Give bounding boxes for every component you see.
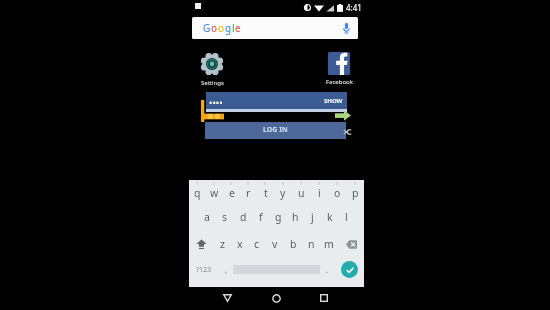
- button[interactable]: ?123: [189, 257, 219, 282]
- button[interactable]: ,: [219, 257, 233, 282]
- other: Voice search: [343, 22, 350, 34]
- button[interactable]: .: [320, 257, 334, 282]
- button[interactable]: Facebook: [321, 52, 357, 86]
- staticText: o: [218, 21, 225, 35]
- staticText: t: [264, 186, 268, 200]
- button[interactable]: c: [248, 231, 266, 257]
- button[interactable]: 6: [274, 180, 292, 205]
- button[interactable]: Space: [233, 257, 320, 282]
- button[interactable]: f: [252, 205, 270, 231]
- staticText: f: [259, 210, 263, 224]
- button[interactable]: g: [270, 205, 287, 231]
- staticText: LOG IN: [263, 125, 288, 135]
- staticText: SHOW: [324, 97, 343, 105]
- staticText: c: [254, 237, 260, 251]
- button[interactable]: a: [198, 205, 216, 231]
- button[interactable]: b: [284, 231, 302, 257]
- button[interactable]: Shift: [189, 231, 214, 257]
- staticText: n: [308, 237, 315, 251]
- staticText: w: [210, 186, 219, 200]
- button[interactable]: m: [320, 231, 338, 257]
- staticText: u: [298, 186, 305, 200]
- staticText: ?123: [196, 265, 212, 275]
- button[interactable]: Recents: [313, 287, 335, 309]
- staticText: z: [220, 237, 225, 251]
- button[interactable]: 4: [240, 180, 257, 205]
- staticText: p: [352, 186, 359, 200]
- button[interactable]: x: [231, 231, 248, 257]
- button[interactable]: G: [192, 17, 358, 39]
- staticText: d: [240, 210, 247, 224]
- staticText: v: [272, 237, 278, 251]
- button[interactable]: 8: [310, 180, 328, 205]
- staticText: Settings: [201, 79, 224, 87]
- button[interactable]: 1: [189, 180, 206, 205]
- button[interactable]: Back: [216, 287, 238, 309]
- staticText: Facebook: [326, 78, 353, 86]
- button[interactable]: 3: [223, 180, 240, 205]
- button[interactable]: j: [304, 205, 321, 231]
- staticText: 3: [230, 181, 233, 186]
- staticText: s: [222, 210, 228, 224]
- staticText: 5: [264, 181, 267, 186]
- staticText: l: [232, 21, 235, 35]
- button[interactable]: 2: [206, 180, 223, 205]
- button[interactable]: s: [216, 205, 234, 231]
- staticText: ••••: [209, 96, 223, 108]
- button[interactable]: z: [214, 231, 231, 257]
- button[interactable]: Enter: [334, 257, 364, 282]
- staticText: h: [292, 210, 299, 224]
- staticText: i: [318, 186, 321, 200]
- staticText: k: [327, 210, 333, 224]
- staticText: y: [280, 186, 286, 200]
- staticText: l: [345, 210, 348, 224]
- button[interactable]: v: [266, 231, 284, 257]
- staticText: 4:41: [346, 2, 362, 13]
- staticText: r: [246, 186, 251, 200]
- staticText: q: [194, 186, 201, 200]
- button[interactable]: Backspace: [338, 231, 364, 257]
- button[interactable]: LOG IN: [205, 122, 346, 139]
- staticText: a: [204, 210, 210, 224]
- button[interactable]: 7: [292, 180, 310, 205]
- staticText: o: [334, 186, 341, 200]
- staticText: x: [237, 237, 243, 251]
- staticText: b: [290, 237, 297, 251]
- button[interactable]: l: [338, 205, 355, 231]
- button[interactable]: 9: [328, 180, 346, 205]
- button[interactable]: h: [287, 205, 304, 231]
- staticText: e: [235, 21, 241, 35]
- staticText: e: [229, 186, 235, 200]
- button[interactable]: Home: [265, 287, 287, 309]
- staticText: 9: [336, 181, 339, 186]
- staticText: .: [326, 264, 329, 275]
- button[interactable]: k: [321, 205, 338, 231]
- staticText: 8: [318, 181, 321, 186]
- staticText: j: [311, 210, 314, 224]
- staticText: ,: [225, 264, 228, 275]
- staticText: 2: [213, 181, 216, 186]
- button[interactable]: n: [302, 231, 320, 257]
- staticText: o: [211, 21, 218, 35]
- staticText: 4: [247, 181, 250, 186]
- staticText: 0: [354, 181, 357, 186]
- staticText: g: [225, 21, 232, 35]
- staticText: g: [275, 210, 282, 224]
- button[interactable]: 0: [346, 180, 364, 205]
- button[interactable]: Settings: [194, 52, 230, 87]
- button[interactable]: d: [234, 205, 252, 231]
- staticText: 1: [196, 181, 199, 186]
- button[interactable]: 5: [257, 180, 274, 205]
- staticText: 6: [282, 181, 285, 186]
- staticText: m: [324, 237, 334, 251]
- staticText: G: [203, 21, 211, 35]
- staticText: 7: [300, 181, 303, 186]
